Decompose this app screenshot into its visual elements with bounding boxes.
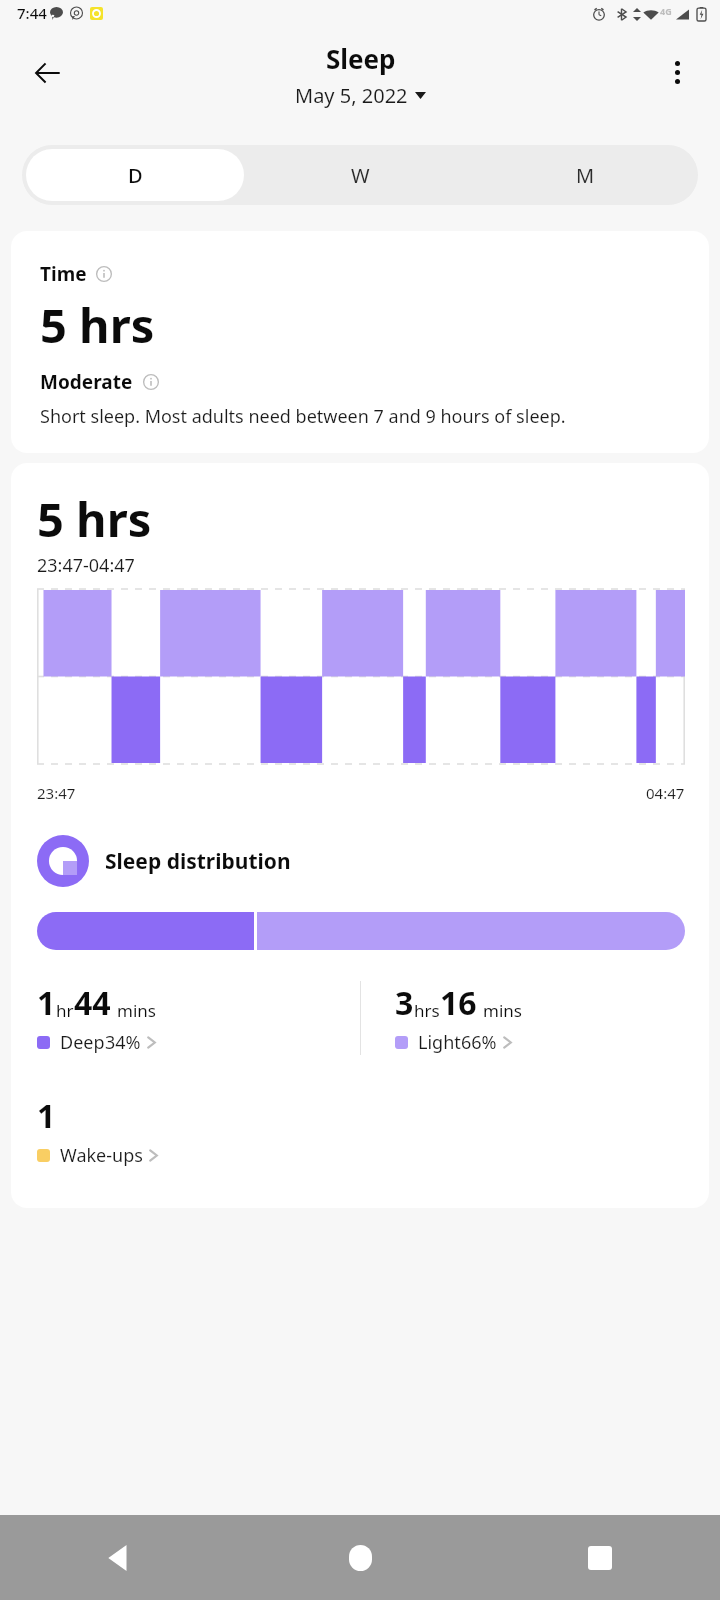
- staticText: 44: [74, 981, 111, 1025]
- staticText: M: [576, 162, 595, 189]
- button[interactable]: More options: [654, 49, 700, 95]
- button[interactable]: Recent apps: [480, 1515, 720, 1600]
- button[interactable]: D: [26, 149, 244, 201]
- button[interactable]: Back: [24, 49, 72, 97]
- button[interactable]: 3: [395, 981, 522, 1055]
- button[interactable]: M: [477, 149, 694, 201]
- staticText: Short sleep. Most adults need between 7 …: [40, 404, 566, 429]
- staticText: 34%: [105, 1030, 141, 1055]
- staticText: Sleep distribution: [105, 847, 291, 876]
- staticText: 23:47-04:47: [37, 553, 135, 578]
- staticText: May 5, 2022: [295, 82, 408, 109]
- staticText: 1: [37, 981, 56, 1025]
- staticText: 23:47: [37, 783, 76, 803]
- staticText: Sleep: [326, 41, 396, 76]
- staticText: hrs: [414, 999, 440, 1022]
- button[interactable]: Back: [0, 1515, 240, 1600]
- staticText: Wake-ups: [60, 1143, 143, 1168]
- button[interactable]: Sleep distribution: [37, 835, 291, 887]
- staticText: W: [351, 162, 370, 189]
- staticText: 66%: [461, 1030, 497, 1055]
- button[interactable]: Home: [240, 1515, 480, 1600]
- staticText: mins: [117, 999, 156, 1022]
- staticText: Time: [40, 261, 87, 287]
- button[interactable]: 1: [37, 981, 157, 1055]
- staticText: 3: [395, 981, 414, 1025]
- staticText: 5 hrs: [37, 487, 152, 551]
- staticText: Light: [418, 1030, 461, 1055]
- staticText: 5 hrs: [40, 293, 155, 357]
- staticText: 04:47: [646, 783, 685, 803]
- staticText: mins: [483, 999, 522, 1022]
- button[interactable]: May 5, 2022: [291, 80, 430, 111]
- button[interactable]: W: [252, 149, 469, 201]
- button[interactable]: 1: [37, 1094, 159, 1168]
- staticText: D: [128, 162, 143, 189]
- staticText: 4G: [660, 5, 672, 17]
- staticText: Deep: [60, 1030, 105, 1055]
- staticText: 16: [440, 981, 477, 1025]
- staticText: 1: [37, 1094, 56, 1138]
- staticText: hr: [56, 999, 74, 1022]
- staticText: 7:44: [17, 3, 47, 23]
- staticText: Moderate: [40, 369, 133, 395]
